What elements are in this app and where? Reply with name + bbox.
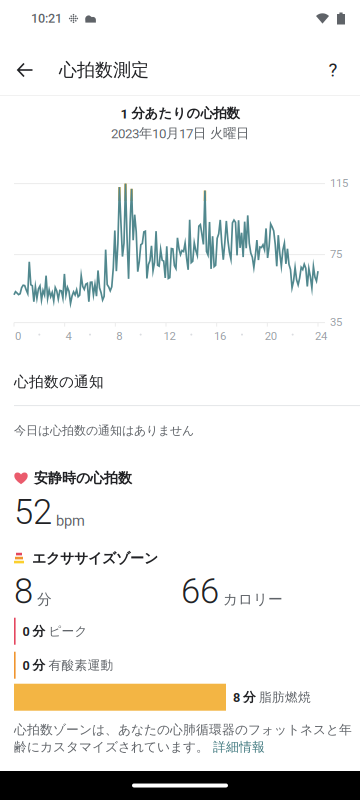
staticText: 有酸素運動 xyxy=(49,657,114,673)
button[interactable]: ヘルプ xyxy=(311,48,355,92)
staticText: 0 xyxy=(15,330,21,343)
staticText: 脂肪燃焼 xyxy=(259,689,311,705)
staticText: 66 xyxy=(181,571,219,612)
staticText: 75 xyxy=(330,248,342,261)
staticText: bpm xyxy=(56,512,85,529)
staticText: 8 xyxy=(116,330,122,343)
staticText: 心拍数測定 xyxy=(59,59,149,81)
staticText: 52 xyxy=(14,492,52,532)
staticText: 8 分 xyxy=(233,689,256,705)
staticText: 分 xyxy=(37,590,52,609)
staticText: 1 分あたりの心拍数 xyxy=(120,105,239,122)
staticText: 8 xyxy=(14,571,33,612)
staticText: 2023年10月17日 火曜日 xyxy=(111,125,249,142)
staticText: 20 xyxy=(265,330,277,343)
staticText: 16 xyxy=(214,330,226,343)
staticText: 心拍数の通知 xyxy=(14,373,104,391)
staticText: 0 分 xyxy=(23,623,46,639)
staticText: 10:21 xyxy=(31,11,62,26)
button[interactable]: 戻る xyxy=(5,48,45,92)
staticText: 115 xyxy=(330,177,348,190)
staticText: 12 xyxy=(163,330,175,343)
staticText: ピーク xyxy=(49,623,88,639)
staticText: 安静時の心拍数 xyxy=(34,469,132,487)
staticText: カロリー xyxy=(223,590,283,609)
staticText: 心拍数ゾーンは、あなたの心肺循環器のフォットネスと年 xyxy=(14,722,352,738)
staticText: 0 分 xyxy=(23,657,46,673)
staticText: 4 xyxy=(65,330,71,343)
staticText: 齢にカスタマイズされています。 xyxy=(14,739,213,755)
staticText: 24 xyxy=(315,330,327,343)
staticText: ? xyxy=(328,59,337,81)
button[interactable]: 詳細情報 xyxy=(213,739,265,755)
staticText: 今日は心拍数の通知はありません xyxy=(14,423,194,438)
staticText: 35 xyxy=(330,316,342,329)
staticText: 詳細情報 xyxy=(213,739,265,755)
staticText: エクササイズゾーン xyxy=(32,549,158,567)
